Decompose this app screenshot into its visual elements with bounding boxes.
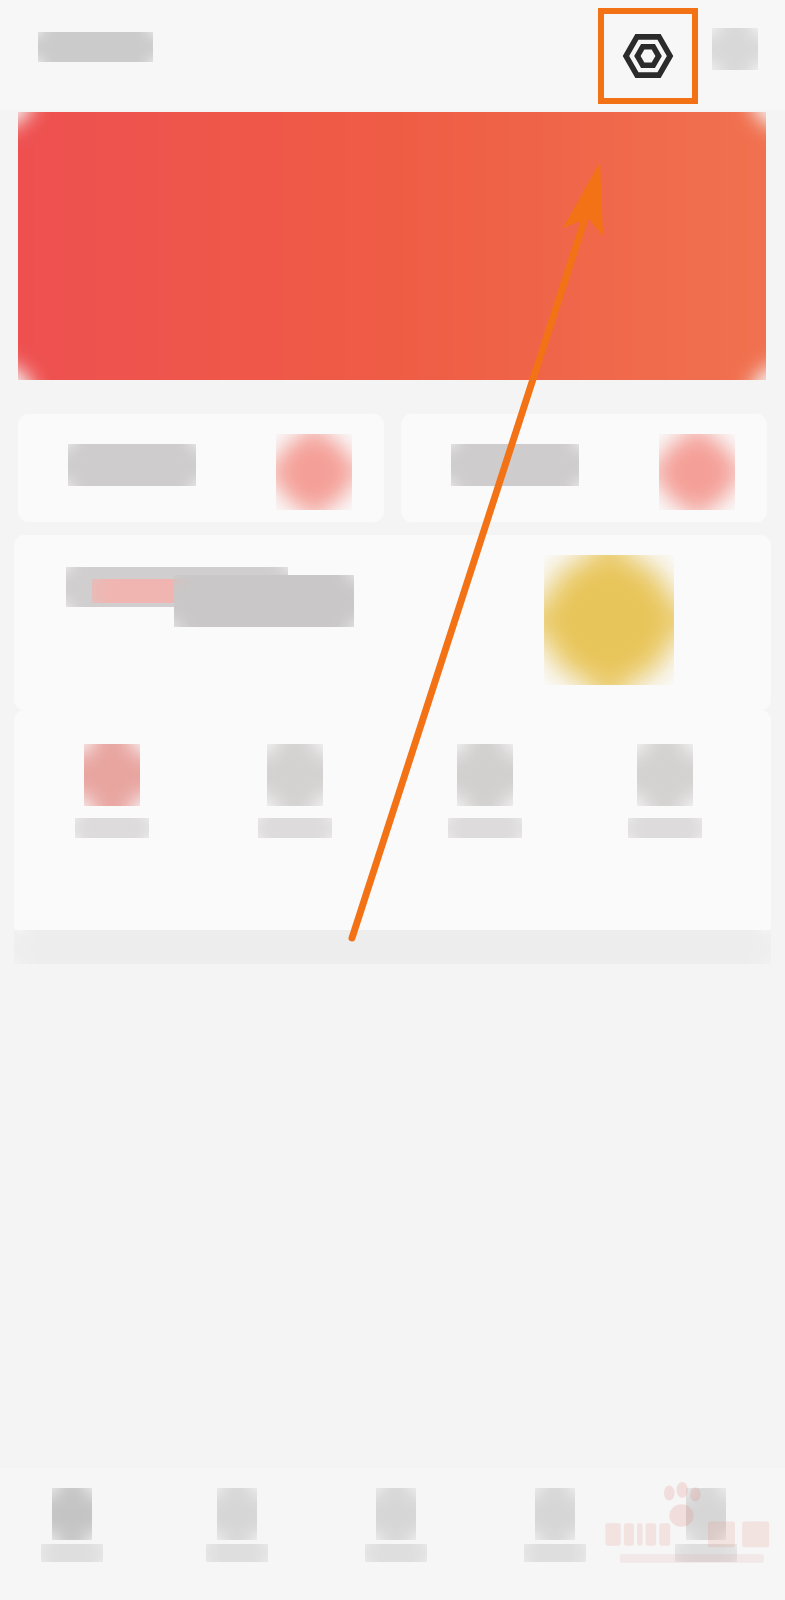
button[interactable]: Tab 1 — [2, 1482, 142, 1586]
button[interactable]: Tab 4 — [485, 1482, 625, 1586]
button[interactable]: Card — [18, 414, 384, 522]
button[interactable]: Banner — [18, 112, 766, 380]
button[interactable]: Settings — [604, 14, 692, 98]
button[interactable]: Shortcut 4 — [603, 732, 727, 882]
button[interactable]: Shortcut 2 — [233, 732, 357, 882]
button[interactable]: Shortcut 1 — [50, 732, 174, 882]
button[interactable]: Tab 3 — [326, 1482, 466, 1586]
button[interactable]: Shortcut 3 — [423, 732, 547, 882]
button[interactable]: Card — [401, 414, 767, 522]
button[interactable]: Tab 5 — [636, 1482, 776, 1586]
button[interactable]: Promotion — [14, 535, 771, 710]
button[interactable]: Tab 2 — [167, 1482, 307, 1586]
button[interactable]: More — [712, 28, 758, 70]
